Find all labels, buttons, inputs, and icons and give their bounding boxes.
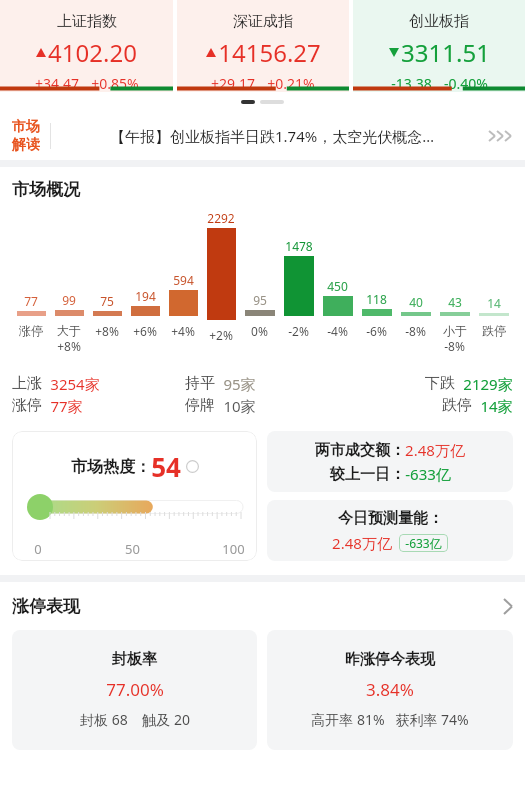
staticText: 0 [34, 540, 42, 558]
staticText: +29.17 [211, 74, 255, 92]
staticText: 停牌 [185, 396, 215, 415]
staticText: 2.48万亿 [332, 533, 392, 553]
staticText: -8% [405, 323, 426, 339]
button[interactable]: 市场 [0, 112, 525, 160]
staticText: -0.40% [444, 74, 488, 92]
staticText: 高开率 81% 获利率 74% [311, 710, 469, 729]
button[interactable]: 今日预测量能： [267, 500, 513, 561]
staticText: 今日预测量能： [338, 509, 443, 528]
staticText: 涨停表现 [12, 596, 80, 617]
staticText: 两市成交额： [315, 441, 405, 460]
staticText: 2292 [207, 210, 235, 226]
staticText: 3.84% [366, 678, 414, 701]
button[interactable]: 封板率 [12, 630, 257, 750]
staticText: -13.38 [391, 74, 432, 92]
staticText: 75 [100, 293, 114, 309]
staticText: 上涨 [12, 374, 42, 393]
staticText: +2% [209, 327, 233, 343]
staticText: 创业板指 [409, 12, 469, 31]
other: 查看更多 [503, 598, 513, 615]
staticText: 95 [253, 292, 267, 308]
staticText: 【午报】创业板指半日跌1.74%，太空光伏概念… [63, 126, 481, 146]
staticText: 14家 [480, 396, 513, 416]
staticText: 594 [173, 272, 194, 288]
staticText: 10家 [223, 396, 256, 416]
button[interactable]: 创业板指 [353, 0, 525, 92]
staticText: -6% [366, 323, 387, 339]
staticText: 95家 [223, 374, 256, 394]
staticText: -633亿 [405, 464, 451, 484]
staticText: 持平 [185, 374, 215, 393]
staticText: 77.00% [106, 678, 164, 701]
staticText: 14 [487, 295, 501, 311]
staticText: 77家 [50, 396, 83, 416]
staticText: 50 [125, 540, 140, 558]
button[interactable]: 涨停表现 [12, 582, 513, 630]
button[interactable]: 市场热度： [12, 431, 257, 561]
staticText: 封板 68 触及 20 [80, 710, 190, 729]
staticText: 0% [251, 323, 268, 339]
staticText: 100 [222, 540, 245, 558]
staticText: 40 [409, 294, 423, 310]
staticText: +6% [133, 323, 157, 339]
staticText: 较上一日： [330, 465, 405, 484]
button[interactable]: 两市成交额： [267, 431, 513, 492]
staticText: 市场概况 [12, 179, 80, 200]
staticText: 3254家 [50, 374, 100, 394]
staticText: 跌停 [442, 396, 472, 415]
staticText: 跌停 [482, 323, 506, 338]
staticText: +0.21% [267, 74, 315, 92]
staticText: +4% [171, 323, 195, 339]
staticText: +34.47 [35, 74, 79, 92]
staticText: 54 [151, 449, 181, 484]
staticText: 大于 [57, 323, 81, 338]
staticText: 2129家 [463, 374, 513, 394]
staticText: 4102.20 [48, 36, 137, 69]
other: 说明 [186, 460, 199, 473]
staticText: -633亿 [405, 535, 442, 551]
staticText: 194 [135, 288, 156, 304]
staticText: 2.48万亿 [405, 440, 465, 460]
staticText: +8% [57, 338, 81, 354]
staticText: 解读 [12, 136, 40, 154]
staticText: 上证指数 [57, 12, 117, 31]
staticText: 涨停 [19, 323, 43, 338]
staticText: 99 [62, 292, 76, 308]
staticText: 118 [366, 291, 387, 307]
staticText: 昨涨停今表现 [345, 650, 435, 669]
staticText: 43 [448, 294, 462, 310]
staticText: 市场 [12, 118, 40, 136]
staticText: -4% [327, 323, 348, 339]
staticText: -8% [444, 338, 465, 354]
button[interactable]: 深证成指 [177, 0, 349, 92]
staticText: -2% [288, 323, 309, 339]
staticText: 涨停 [12, 396, 42, 415]
staticText: +0.85% [91, 74, 139, 92]
staticText: 封板率 [112, 650, 157, 669]
staticText: 小于 [443, 323, 467, 338]
staticText: +8% [95, 323, 119, 339]
staticText: 深证成指 [233, 12, 293, 31]
staticText: 1478 [285, 238, 313, 254]
staticText: 77 [24, 293, 38, 309]
button[interactable]: 上证指数 [0, 0, 173, 92]
other: More [487, 129, 513, 143]
staticText: 市场热度： [71, 457, 151, 477]
staticText: 3311.51 [401, 36, 490, 69]
staticText: 下跌 [425, 374, 455, 393]
staticText: 450 [327, 278, 348, 294]
button[interactable]: 昨涨停今表现 [267, 630, 513, 750]
staticText: 14156.27 [218, 36, 321, 69]
